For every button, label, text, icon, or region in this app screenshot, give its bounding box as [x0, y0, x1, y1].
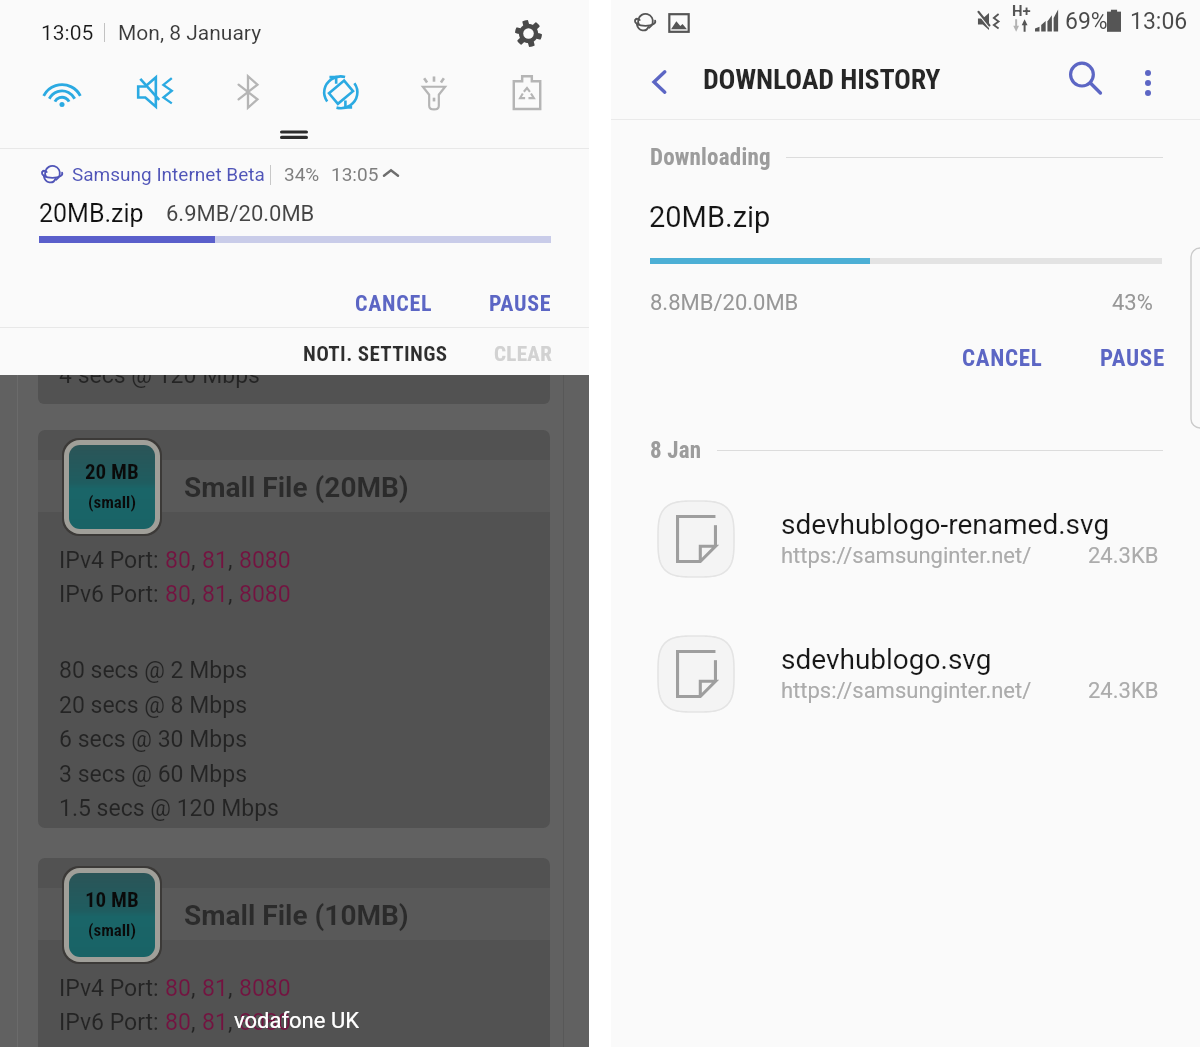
staticText: CANCEL — [962, 345, 1043, 372]
staticText: CLEAR — [494, 342, 553, 367]
button[interactable]: 20 MB — [38, 430, 550, 828]
staticText: , — [191, 1009, 202, 1036]
staticText: 13:05 — [41, 21, 94, 46]
staticText: IPv4 Port: — [59, 547, 165, 574]
staticText: CANCEL — [355, 291, 433, 317]
staticText: https://samsunginter.net/ — [781, 543, 1032, 569]
staticText: Samsung Internet Beta — [72, 163, 265, 185]
staticText: 80 — [165, 975, 191, 1002]
staticText: 80 — [165, 581, 191, 608]
staticText: 3 secs @ 60 Mbps — [59, 761, 248, 788]
button[interactable]: Settings — [506, 11, 550, 55]
button[interactable]: CANCEL — [952, 337, 1053, 380]
button[interactable]: Quick setting toggle — [128, 65, 182, 119]
staticText: 8.8MB/20.0MB — [650, 290, 799, 316]
staticText: 10 MB — [85, 888, 139, 913]
staticText: 81 — [202, 547, 228, 574]
staticText: https://samsunginter.net/ — [781, 678, 1032, 704]
staticText: Small File (20MB) — [184, 471, 409, 504]
staticText: 1.5 secs @ 120 Mbps — [59, 795, 279, 822]
staticText: 81 — [202, 581, 228, 608]
staticText: 6.9MB/20.0MB — [166, 201, 315, 227]
staticText: 4 secs @ 120 Mbps — [59, 362, 260, 389]
staticText: 8080 — [239, 581, 291, 608]
staticText: vodafone UK — [234, 1008, 359, 1034]
staticText: Mon, 8 January — [118, 21, 262, 46]
staticText: IPv4 Port: — [59, 975, 165, 1002]
staticText: 20MB.zip — [39, 199, 144, 228]
staticText: 8080 — [239, 1009, 291, 1036]
staticText: 80 secs @ 2 Mbps — [59, 657, 248, 684]
staticText: IPv6 Port: — [59, 581, 165, 608]
button[interactable]: 4 secs @ 120 Mbps — [38, 300, 550, 404]
staticText: PAUSE — [489, 291, 552, 317]
staticText: 80 — [165, 547, 191, 574]
staticText: PAUSE — [1100, 345, 1165, 372]
button[interactable]: Back — [638, 60, 682, 104]
staticText: , — [191, 581, 202, 608]
staticText: 13:05 — [331, 163, 379, 185]
staticText: 8080 — [239, 975, 291, 1002]
staticText: 6 secs @ 30 Mbps — [59, 726, 248, 753]
button[interactable]: CANCEL — [345, 283, 443, 325]
staticText: 20 secs @ 8 Mbps — [59, 692, 248, 719]
staticText: 34% — [284, 163, 320, 185]
staticText: sdevhublogo-renamed.svg — [781, 508, 1110, 541]
staticText: 24.3KB — [1088, 678, 1159, 704]
staticText: , — [228, 975, 239, 1002]
button[interactable]: sdevhublogo-renamed.svg — [611, 471, 1200, 606]
staticText: Small File (10MB) — [184, 899, 409, 932]
button[interactable]: PAUSE — [479, 283, 562, 325]
staticText: sdevhublogo.svg — [781, 643, 992, 676]
staticText: , — [191, 547, 202, 574]
staticText: , — [228, 1009, 239, 1036]
staticText: 81 — [202, 975, 228, 1002]
staticText: DOWNLOAD HISTORY — [703, 63, 941, 96]
button[interactable]: More options — [1122, 57, 1174, 109]
staticText: 8080 — [239, 547, 291, 574]
button[interactable]: Quick setting toggle — [500, 65, 554, 119]
staticText: 80 — [165, 1009, 191, 1036]
button[interactable]: Quick setting toggle — [314, 65, 368, 119]
staticText: NOTI. SETTINGS — [303, 342, 448, 367]
staticText: , — [228, 581, 239, 608]
staticText: , — [191, 975, 202, 1002]
staticText: 43% — [1112, 290, 1153, 316]
staticText: H+ — [1012, 2, 1031, 20]
staticText: 20MB.zip — [649, 200, 771, 234]
button[interactable]: Quick setting toggle — [35, 65, 89, 119]
staticText: IPv6 Port: — [59, 1009, 165, 1036]
button[interactable]: NOTI. SETTINGS — [293, 334, 458, 375]
button[interactable]: CLEAR — [484, 334, 563, 375]
staticText: 8 Jan — [650, 437, 702, 464]
button[interactable]: Quick setting toggle — [221, 65, 275, 119]
button[interactable]: Search — [1058, 52, 1110, 104]
staticText: 81 — [202, 1009, 228, 1036]
button[interactable]: sdevhublogo.svg — [611, 606, 1200, 741]
staticText: 69% — [1065, 8, 1108, 35]
button[interactable]: PAUSE — [1090, 337, 1175, 380]
staticText: 20 MB — [85, 460, 139, 485]
staticText: 24.3KB — [1088, 543, 1159, 569]
staticText: (small) — [88, 920, 136, 940]
button[interactable]: Quick setting toggle — [407, 65, 461, 119]
staticText: (small) — [88, 492, 136, 512]
staticText: Downloading — [650, 144, 771, 171]
button[interactable]: 10 MB — [38, 858, 550, 1047]
staticText: , — [228, 547, 239, 574]
staticText: 13:06 — [1130, 8, 1188, 35]
